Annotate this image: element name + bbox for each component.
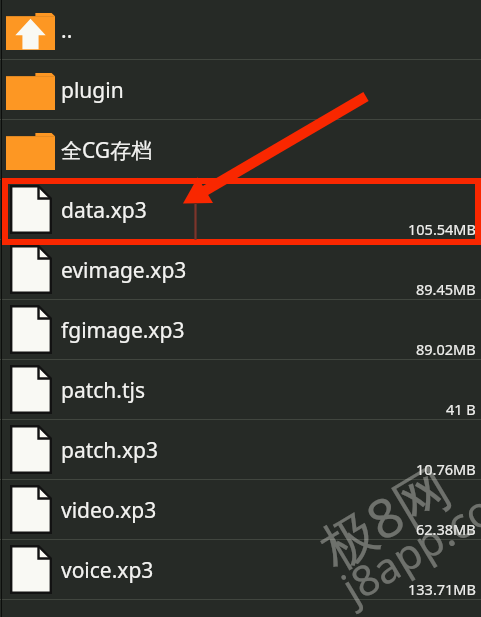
staticText: 89.45MB xyxy=(416,279,476,299)
staticText: j8app.com xyxy=(331,459,481,615)
other: Folder xyxy=(6,73,55,110)
other: File xyxy=(10,545,52,594)
other: File xyxy=(10,185,52,234)
staticText: patch.xp3 xyxy=(61,436,158,465)
other: File xyxy=(10,485,52,534)
other: File xyxy=(10,425,52,474)
button[interactable]: File xyxy=(0,360,481,420)
button[interactable]: File xyxy=(0,540,481,600)
button[interactable]: Folder xyxy=(0,60,481,120)
other: Folder xyxy=(6,133,55,170)
staticText: video.xp3 xyxy=(61,496,157,525)
button[interactable]: Folder xyxy=(0,120,481,180)
button[interactable]: File xyxy=(0,180,481,240)
staticText: 极8网 xyxy=(306,449,463,584)
button[interactable]: File xyxy=(0,240,481,300)
staticText: patch.tjs xyxy=(61,376,146,405)
staticText: 133.71MB xyxy=(408,579,476,599)
staticText: evimage.xp3 xyxy=(61,256,187,285)
staticText: voice.xp3 xyxy=(61,556,154,585)
staticText: 全CG存档 xyxy=(61,136,153,165)
staticText: 10.76MB xyxy=(416,459,476,479)
button[interactable]: Parent folder xyxy=(0,0,481,60)
button[interactable]: File xyxy=(0,300,481,360)
button[interactable]: File xyxy=(0,480,481,540)
staticText: data.xp3 xyxy=(61,196,147,225)
other: File xyxy=(10,365,52,414)
other: File xyxy=(10,305,52,354)
staticText: plugin xyxy=(61,76,124,105)
other: Parent folder xyxy=(6,13,55,50)
staticText: 89.02MB xyxy=(416,339,476,359)
staticText: 62.38MB xyxy=(416,519,476,539)
staticText: 105.54MB xyxy=(408,219,476,239)
staticText: fgimage.xp3 xyxy=(61,316,185,345)
button[interactable]: File xyxy=(0,420,481,480)
staticText: .. xyxy=(61,16,73,45)
staticText: 41 B xyxy=(446,399,476,419)
other: File xyxy=(10,245,52,294)
